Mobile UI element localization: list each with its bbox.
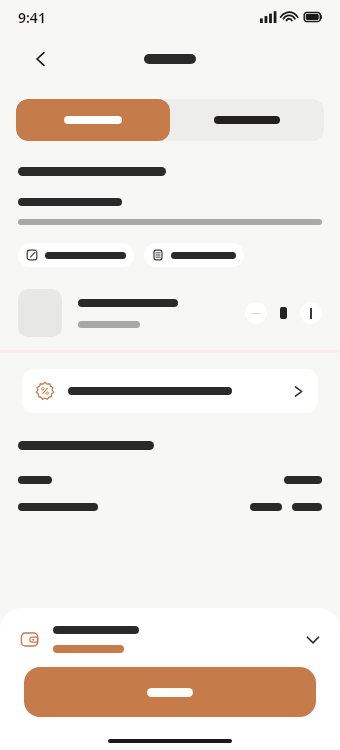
button[interactable] xyxy=(16,99,170,141)
button[interactable]: Decrease quantity xyxy=(18,289,322,337)
staticText: 9:41 xyxy=(18,8,46,27)
button[interactable] xyxy=(144,243,244,267)
button[interactable] xyxy=(20,626,320,653)
button[interactable] xyxy=(18,243,134,267)
button[interactable]: Increase quantity xyxy=(300,302,322,324)
button[interactable] xyxy=(24,667,316,717)
button[interactable]: Decrease quantity xyxy=(245,302,267,324)
button[interactable]: Back xyxy=(26,44,56,74)
button[interactable] xyxy=(22,369,318,413)
button[interactable] xyxy=(170,99,324,141)
